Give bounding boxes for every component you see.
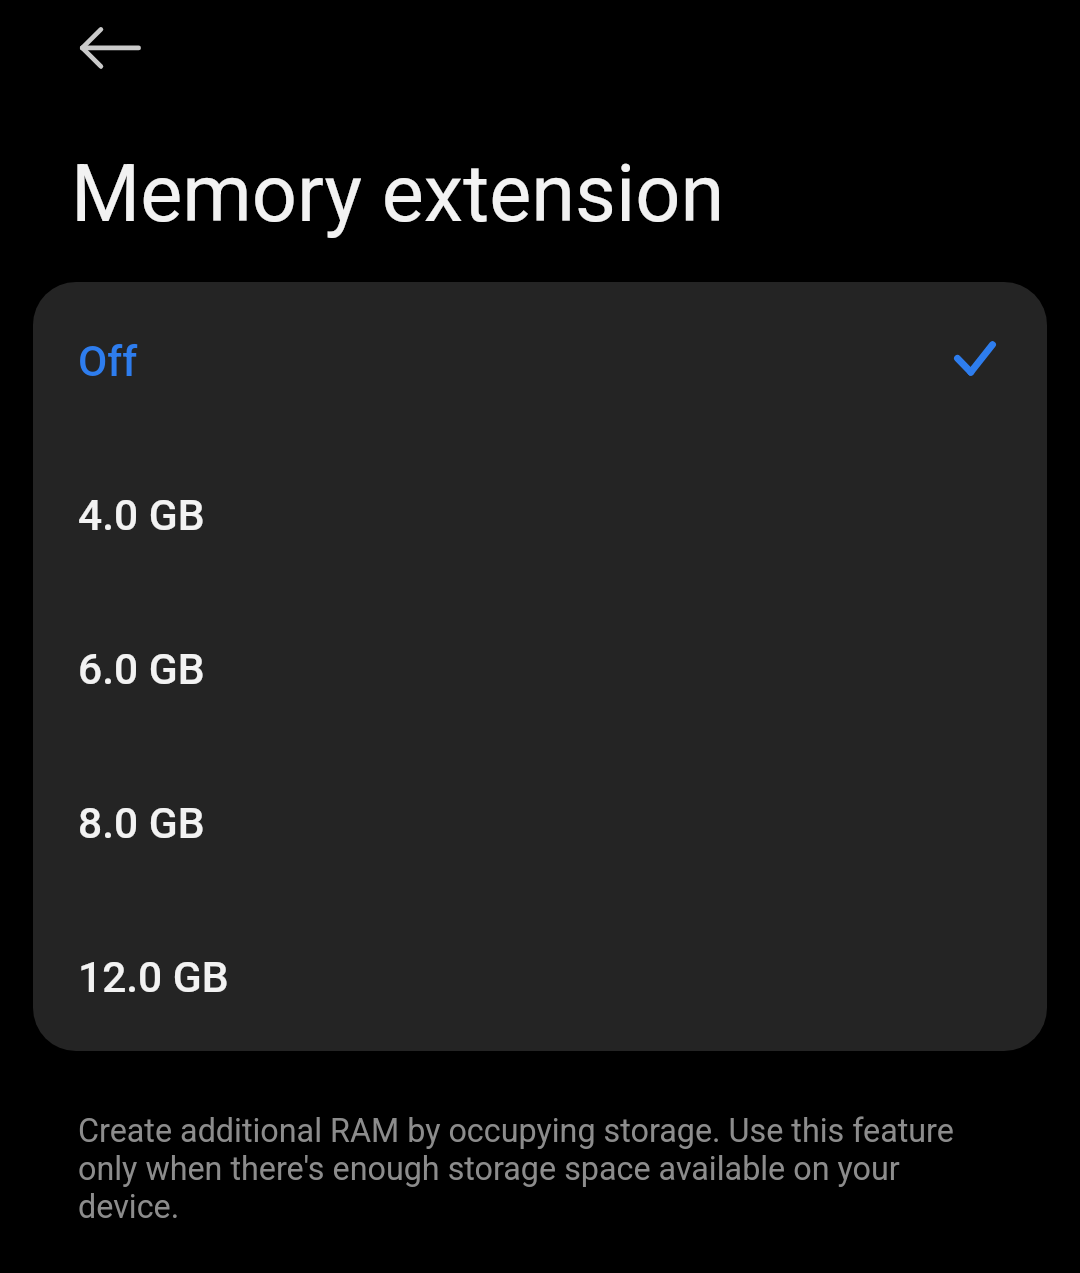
staticText: Create additional RAM by occupying stora… (78, 1112, 1002, 1226)
staticText: 8.0 GB (78, 799, 205, 849)
staticText: Memory extension (71, 147, 725, 240)
staticText: Off (78, 337, 138, 387)
toggle[interactable]: 4.0 GB (33, 436, 1047, 590)
button[interactable]: Navigate up (62, 11, 158, 84)
staticText: 6.0 GB (78, 645, 205, 695)
toggle[interactable]: 12.0 GB (33, 898, 1047, 1051)
toggle[interactable]: 8.0 GB (33, 744, 1047, 898)
other: Selected (954, 341, 996, 376)
staticText: 12.0 GB (78, 953, 229, 1003)
toggle[interactable]: 6.0 GB (33, 590, 1047, 744)
staticText: 4.0 GB (78, 491, 205, 541)
toggle[interactable]: Off (33, 282, 1047, 436)
